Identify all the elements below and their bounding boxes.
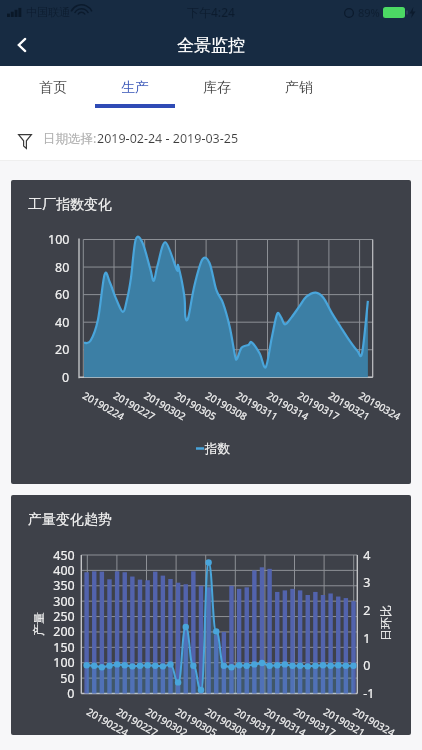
staticText: 产销 — [285, 79, 313, 97]
button[interactable]: 首页 — [12, 66, 94, 109]
button[interactable]: 产销 — [258, 66, 340, 109]
staticText: 首页 — [39, 79, 67, 97]
button[interactable]: Back — [0, 24, 44, 66]
staticText: 全景监控 — [177, 35, 245, 56]
button[interactable]: 库存 — [176, 66, 258, 109]
staticText: 工厂指数变化 — [28, 196, 112, 214]
staticText: 中国联通 — [26, 5, 70, 19]
staticText: 日期选择: — [43, 130, 97, 147]
staticText: 产量变化趋势 — [28, 511, 112, 529]
staticText: 下午4:24 — [187, 4, 235, 20]
staticText: 生产 — [121, 79, 149, 97]
staticText: 89% — [358, 5, 380, 20]
button[interactable]: 日期选择: — [0, 109, 422, 161]
staticText: 库存 — [203, 79, 231, 97]
button[interactable]: 生产 — [94, 66, 176, 109]
staticText: 2019-02-24 - 2019-03-25 — [97, 130, 239, 147]
